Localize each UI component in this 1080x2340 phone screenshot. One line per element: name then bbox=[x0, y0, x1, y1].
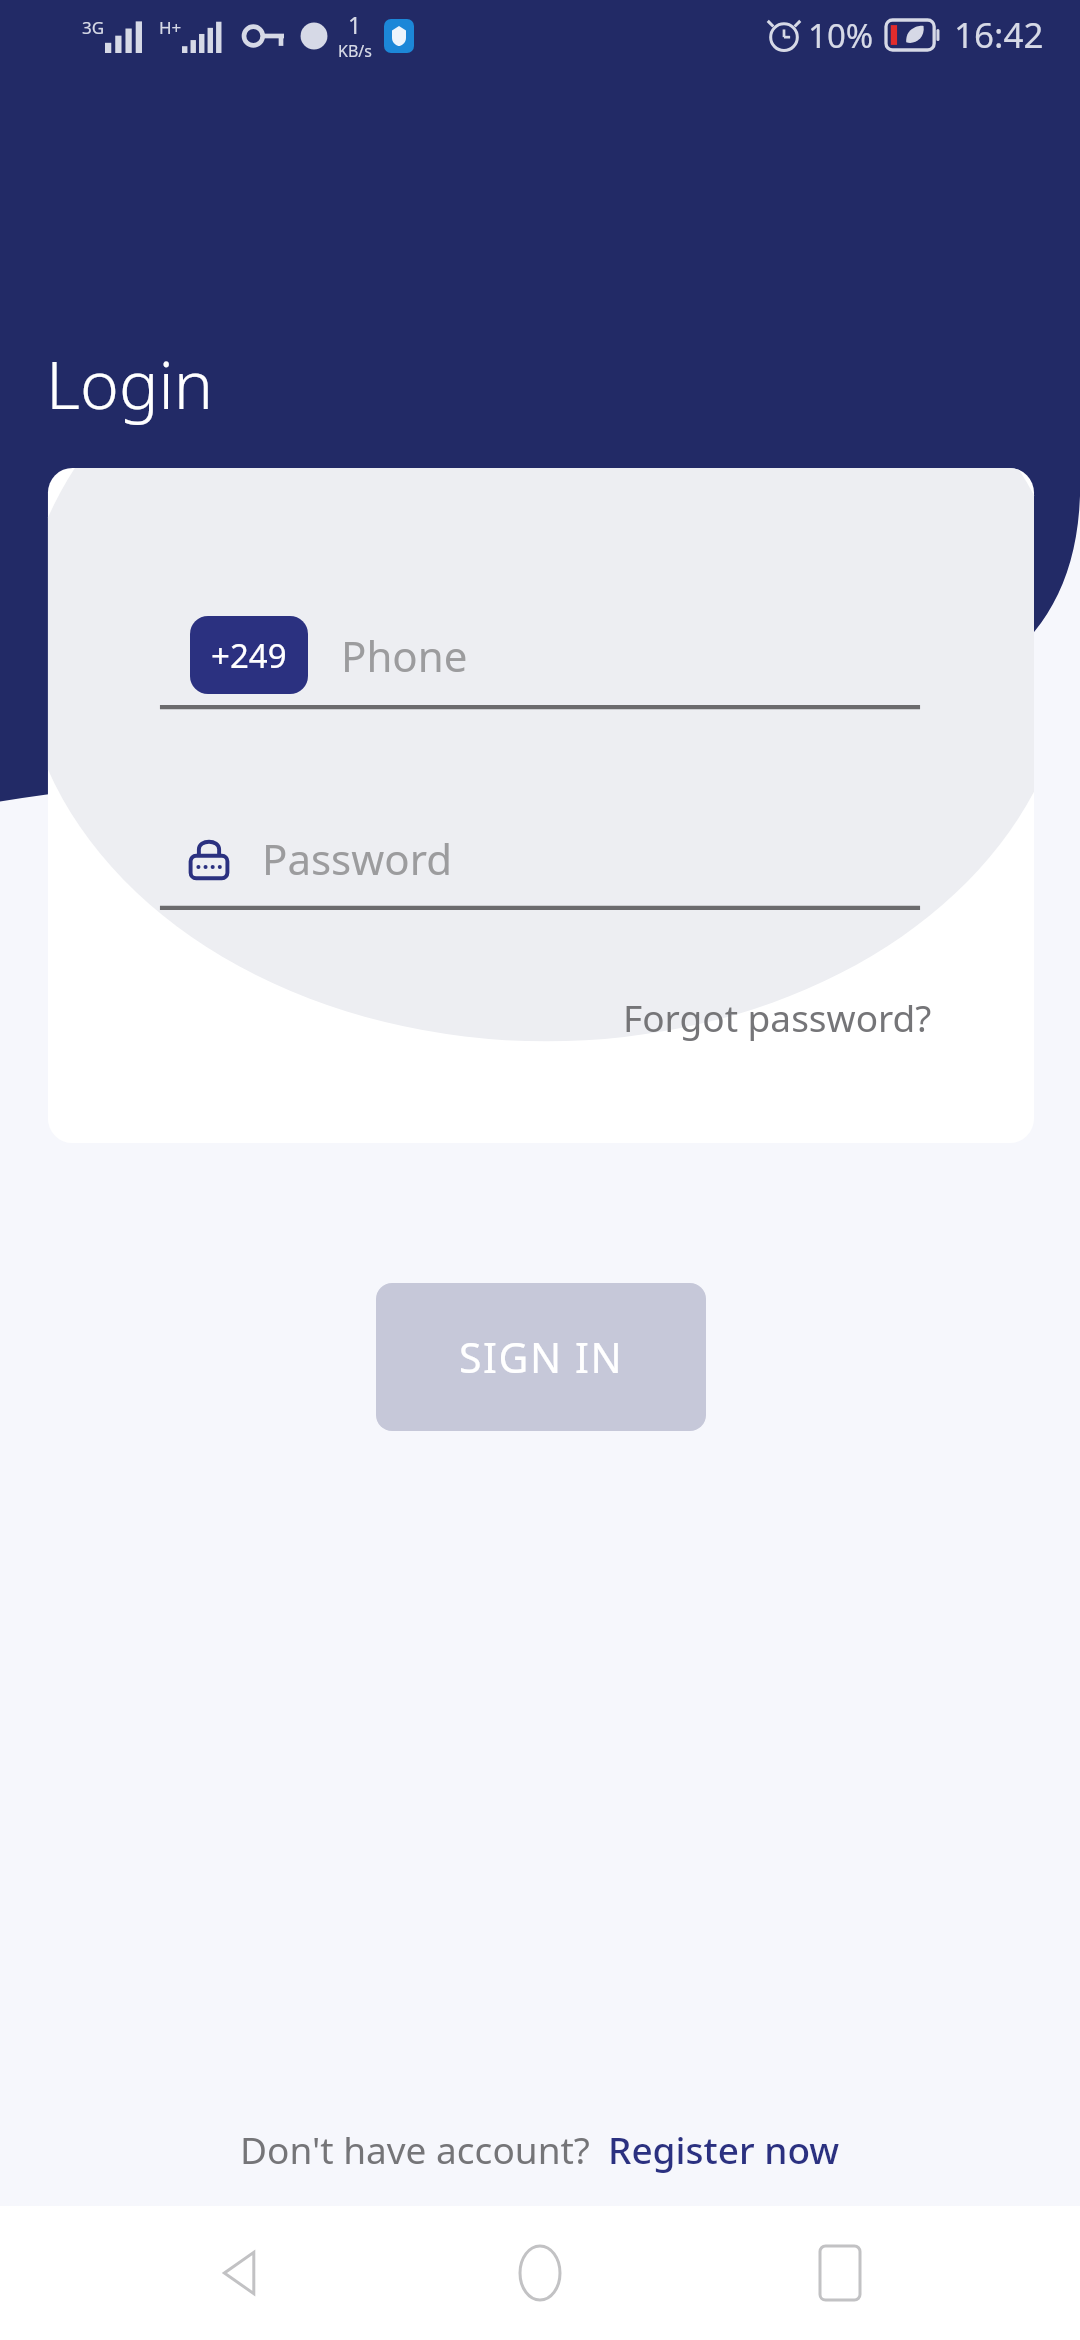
button[interactable]: Home bbox=[480, 2213, 600, 2333]
staticText: Forgot password? bbox=[623, 992, 932, 1042]
button[interactable]: Back bbox=[180, 2213, 300, 2333]
button[interactable]: SIGN IN bbox=[376, 1283, 706, 1431]
staticText: Password bbox=[262, 830, 452, 887]
staticText: +249 bbox=[211, 633, 287, 678]
button[interactable]: Country code +249 bbox=[190, 616, 468, 694]
button[interactable]: Country code +249 bbox=[190, 616, 308, 694]
staticText: Register now bbox=[608, 2124, 840, 2174]
staticText: 1 bbox=[348, 9, 362, 40]
staticText: SIGN IN bbox=[459, 1329, 624, 1385]
staticText: 10% bbox=[808, 13, 874, 58]
button[interactable]: Register now bbox=[608, 2124, 840, 2174]
button[interactable]: Forgot password? bbox=[623, 992, 932, 1042]
button[interactable]: Password bbox=[186, 830, 452, 887]
staticText: 16:42 bbox=[954, 11, 1044, 59]
staticText: KB/s bbox=[338, 40, 372, 62]
staticText: H+ bbox=[159, 16, 182, 39]
staticText: Don't have account? bbox=[240, 2124, 590, 2174]
staticText: 3G bbox=[82, 16, 105, 39]
staticText: mostaql.com bbox=[445, 2236, 635, 2278]
button[interactable]: Recent apps bbox=[780, 2213, 900, 2333]
staticText: Login bbox=[46, 338, 214, 428]
staticText: Phone bbox=[341, 627, 468, 684]
